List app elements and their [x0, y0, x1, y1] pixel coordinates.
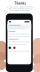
button[interactable]: Menu: [24, 21, 30, 23]
button[interactable]: Red swatch: [13, 47, 16, 49]
staticText: Thanks: [14, 2, 25, 5]
button[interactable]: Back: [9, 20, 11, 23]
staticText: Lorem ipsum dolor sit amet, consectetur …: [6, 6, 34, 8]
staticText: labore et dolore magna aliqua: [10, 10, 30, 11]
staticText: elit sed do eiusmod tempor incididunt: [8, 8, 31, 10]
button[interactable]: Black swatch: [9, 47, 11, 49]
